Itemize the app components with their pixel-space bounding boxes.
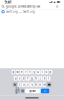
button[interactable]: x [22, 82, 25, 87]
staticText: r [25, 70, 26, 74]
staticText: o [45, 70, 47, 74]
button[interactable]: Emoji [21, 89, 24, 93]
staticText: l [48, 77, 49, 80]
staticText: k [44, 77, 45, 80]
button[interactable]: i [41, 70, 44, 74]
staticText: c [27, 83, 28, 86]
staticText: d [23, 77, 25, 80]
button[interactable]: google.com/search?q=sw [0, 4, 64, 9]
button[interactable]: p [49, 70, 52, 74]
staticText: 123 [16, 87, 20, 94]
button[interactable]: g [30, 76, 34, 81]
button[interactable]: Go [41, 89, 49, 93]
staticText: u [37, 70, 39, 74]
button[interactable]: n [38, 82, 42, 87]
staticText: n [39, 83, 41, 86]
button[interactable]: w [16, 70, 19, 74]
button[interactable]: t [28, 70, 32, 74]
button[interactable]: r [24, 70, 27, 74]
staticText: f [27, 77, 28, 80]
staticText: google.com/search?q=sw [6, 5, 40, 8]
staticText: x [23, 83, 24, 86]
staticText: a [15, 77, 16, 80]
staticText: p [50, 70, 52, 74]
button[interactable]: l [47, 76, 50, 81]
staticText: j [40, 77, 41, 80]
staticText: s [19, 77, 20, 80]
staticText: e [21, 70, 23, 74]
button[interactable]: Delete [47, 82, 51, 87]
button[interactable]: a [14, 76, 17, 81]
staticText: y [34, 70, 35, 74]
staticText: i [42, 70, 43, 74]
button[interactable]: z [18, 82, 21, 87]
button[interactable]: u [36, 70, 40, 74]
button[interactable]: h [34, 76, 38, 81]
button[interactable]: j [38, 76, 42, 81]
staticText: g [31, 77, 33, 80]
button[interactable]: 123 [15, 89, 20, 93]
button[interactable]: y [32, 70, 36, 74]
button[interactable]: d [22, 76, 25, 81]
button[interactable]: v [30, 82, 34, 87]
button[interactable]: q [12, 70, 15, 74]
staticText: swift.org — Swift.org [6, 10, 35, 13]
button[interactable]: b [34, 82, 38, 87]
staticText: w [16, 70, 18, 74]
button[interactable]: m [43, 82, 46, 87]
staticText: 9:41 [4, 0, 11, 5]
button[interactable]: Shift [13, 82, 17, 87]
button[interactable]: k [43, 76, 46, 81]
staticText: q [12, 70, 14, 74]
button[interactable]: f [26, 76, 30, 81]
staticText: h [35, 77, 37, 80]
staticText: m [43, 83, 45, 86]
button[interactable]: e [20, 70, 23, 74]
staticText: space [29, 89, 36, 93]
button[interactable]: c [26, 82, 30, 87]
button[interactable]: space [25, 89, 40, 93]
staticText: b [35, 83, 37, 86]
staticText: t [29, 70, 30, 74]
button[interactable]: swift.org — Swift.org [0, 9, 64, 14]
staticText: z [19, 83, 20, 86]
button[interactable]: s [18, 76, 21, 81]
button[interactable]: o [45, 70, 48, 74]
